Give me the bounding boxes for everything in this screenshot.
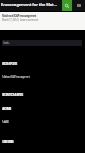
button[interactable]: RECENT POSTS <box>0 61 85 66</box>
button[interactable]: ARCHIVES <box>0 106 85 111</box>
staticText: RECENT COMMENTS <box>2 93 23 97</box>
button[interactable]: March 2014 <box>0 119 85 124</box>
button[interactable]: Menu <box>72 0 85 11</box>
staticText: Match and SOAP encouragement <box>2 75 30 79</box>
staticText: CATEGORIES <box>2 140 13 144</box>
staticText: Search... <box>3 41 10 45</box>
staticText: Match and SOAP encouragement <box>2 14 37 18</box>
button[interactable]: RECENT COMMENTS <box>0 92 85 97</box>
button[interactable]: Match and SOAP encouragement <box>0 74 85 79</box>
staticText: RECENT POSTS <box>2 62 17 66</box>
button[interactable]: Search... <box>2 40 82 46</box>
staticText: March 2014 <box>2 120 9 124</box>
button[interactable]: Match and SOAP encouragement <box>0 12 85 30</box>
staticText: Encouragement for the Mat... <box>1 2 62 7</box>
staticText: March 17, 2014 | Leave a comment <box>2 18 38 22</box>
button[interactable]: CATEGORIES <box>0 139 85 144</box>
staticText: ARCHIVES <box>2 107 11 111</box>
button[interactable]: Search <box>62 0 72 11</box>
